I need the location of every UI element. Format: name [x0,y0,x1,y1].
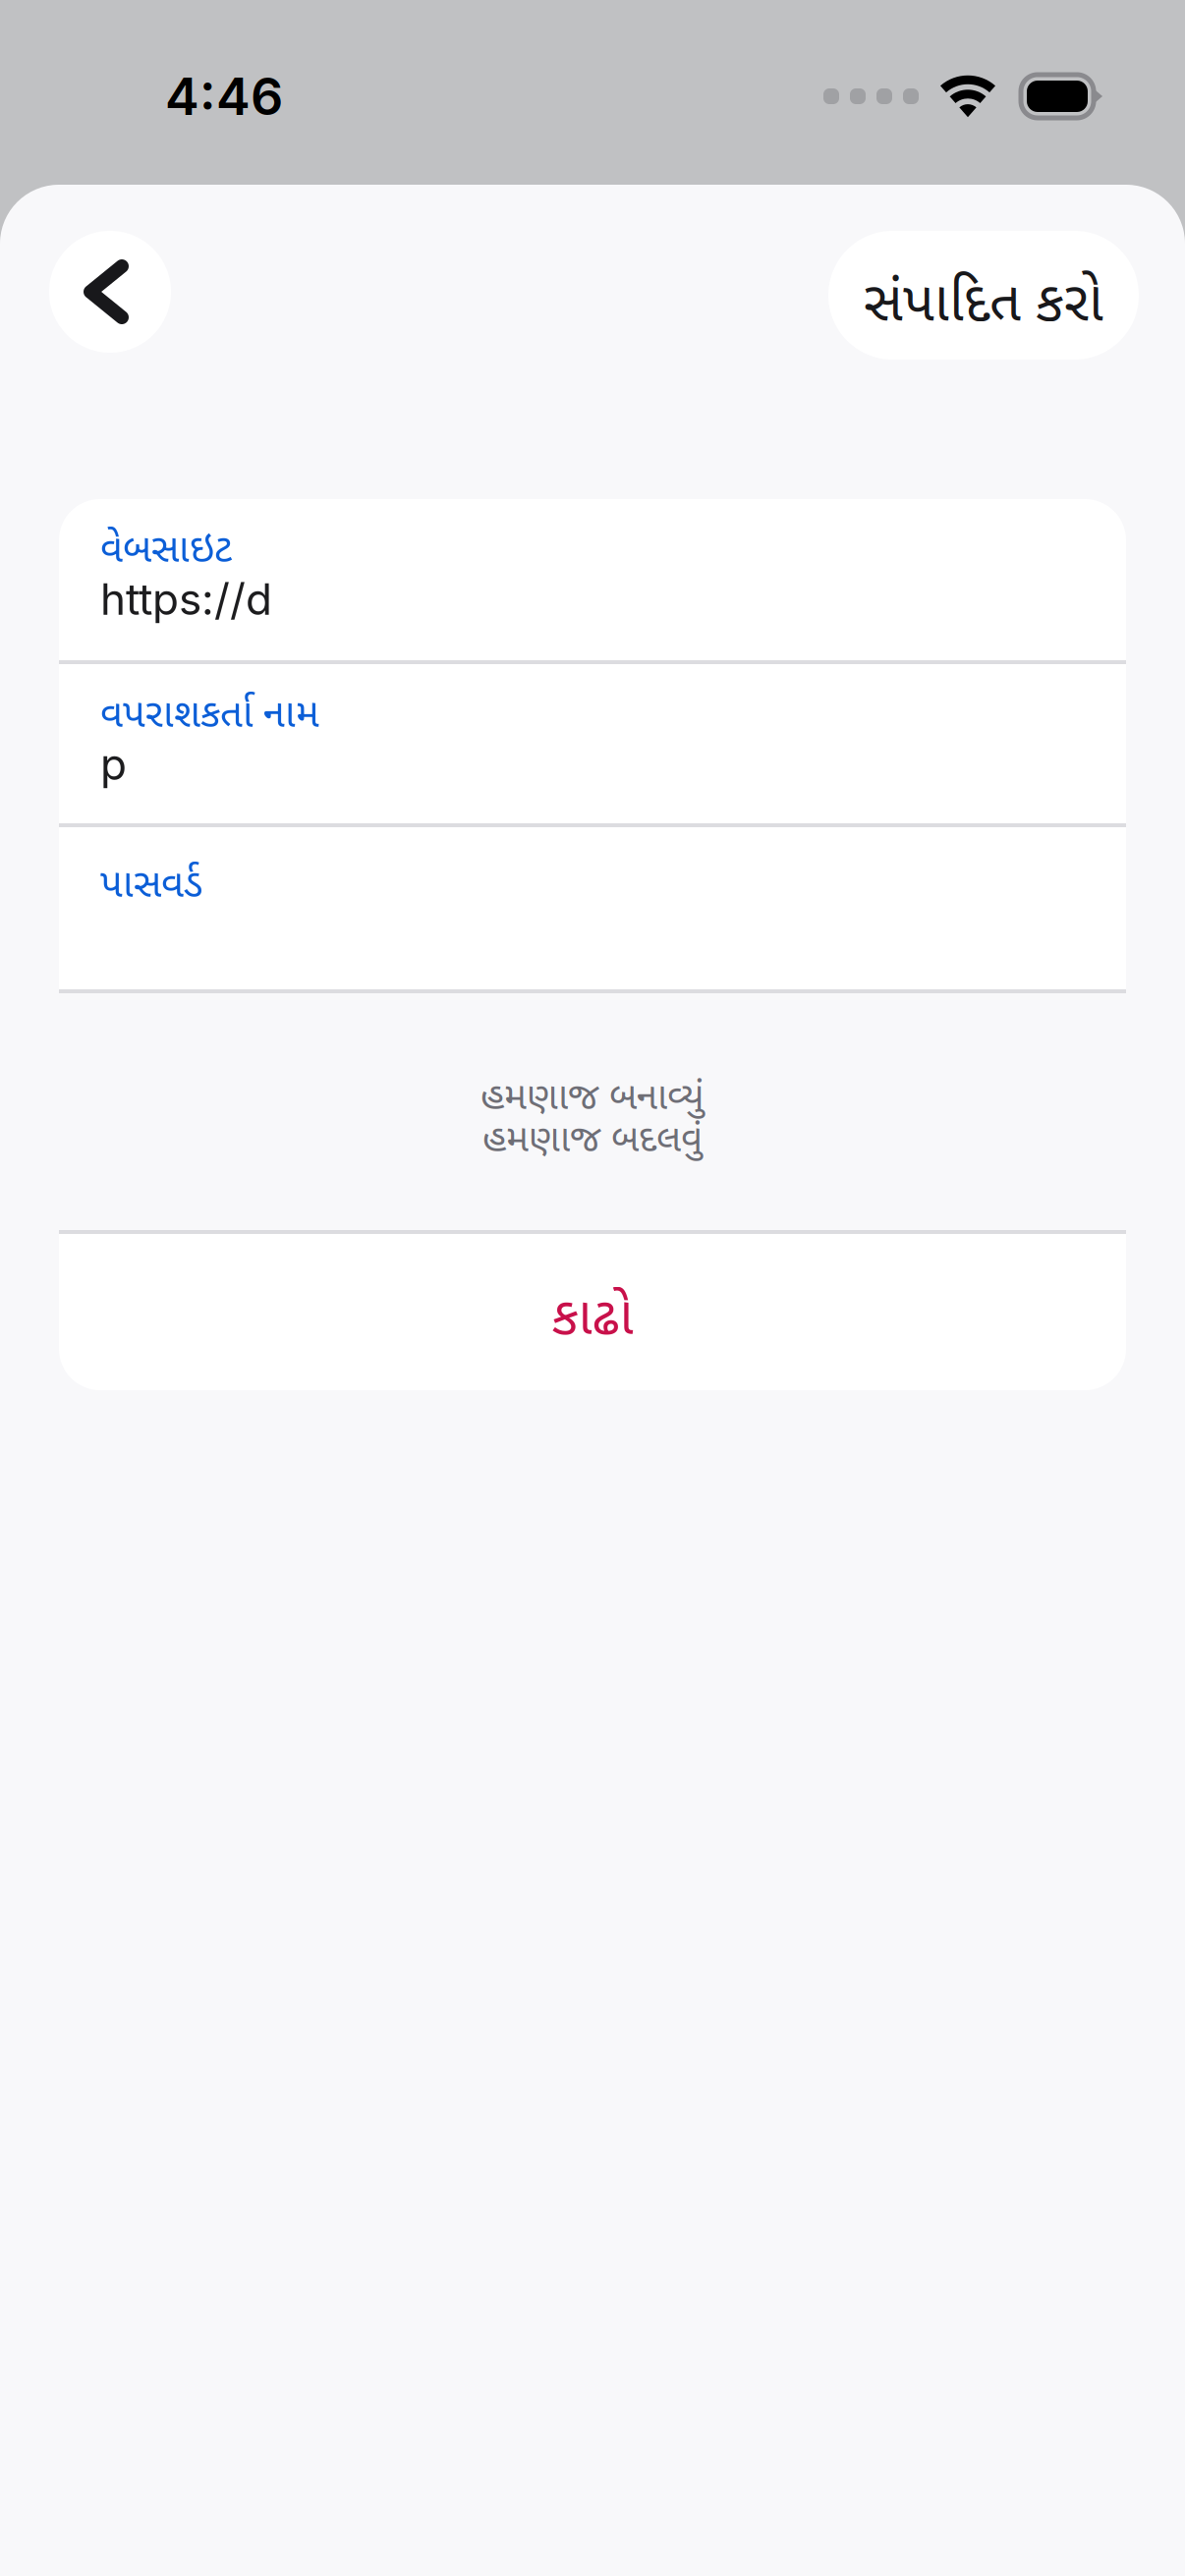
button[interactable]: કાઢો [59,1230,1126,1390]
button[interactable]: પાસવર્ડ [59,827,1126,989]
staticText: વપરાશકર્તા નામ [100,692,319,743]
staticText: વેબસાઇટ [100,527,232,578]
staticText: હમણાજ બનાવ્યું [480,1075,705,1124]
button[interactable]: Back [49,231,171,353]
staticText: p [100,738,127,790]
staticText: કાઢો [552,1287,633,1355]
staticText: 4:46 [165,65,283,127]
button[interactable]: સંપાદિત કરો [828,231,1139,360]
staticText: પાસવર્ડ [100,862,202,913]
button[interactable]: વેબસાઇટ [59,499,1126,660]
staticText: https://d [100,573,272,625]
staticText: હમણાજ બદલવું [482,1117,703,1167]
staticText: સંપાદિત કરો [864,271,1103,343]
button[interactable]: વપરાશકર્તા નામ [59,664,1126,823]
